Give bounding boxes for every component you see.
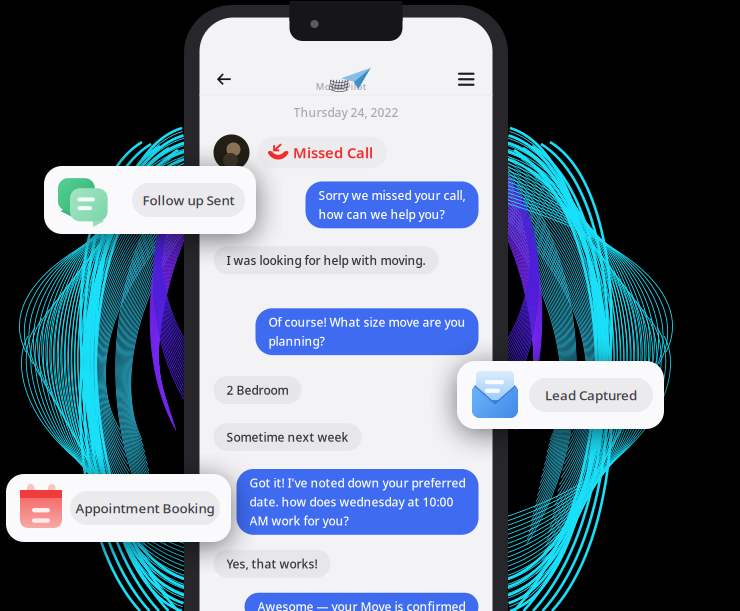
staticText: Got it! I've noted down your preferred d… xyxy=(249,475,465,529)
button[interactable]: Back xyxy=(210,64,238,94)
staticText: I was looking for help with moving. xyxy=(226,252,425,268)
button[interactable]: Lead Captured xyxy=(457,361,664,429)
staticText: Thursday 24, 2022 xyxy=(293,104,398,120)
staticText: Missed Call xyxy=(293,143,373,162)
button[interactable]: Follow up Sent xyxy=(44,166,256,234)
staticText: Follow up Sent xyxy=(142,191,234,209)
staticText: Of course! What size move are you planni… xyxy=(268,314,465,349)
staticText: Appointment Booking xyxy=(75,499,214,517)
staticText: Awesome — your Move is confirmed xyxy=(257,599,465,611)
staticText: MoverPilot xyxy=(316,80,367,93)
button[interactable]: Menu xyxy=(451,64,481,94)
staticText: Lead Captured xyxy=(545,386,637,404)
staticText: Sometime next week xyxy=(226,429,348,445)
staticText: 2 Bedroom xyxy=(226,382,288,398)
button[interactable]: Appointment Booking xyxy=(6,474,231,542)
staticText: Yes, that works! xyxy=(226,556,317,572)
staticText: Sorry we missed your call, how can we he… xyxy=(318,187,465,222)
